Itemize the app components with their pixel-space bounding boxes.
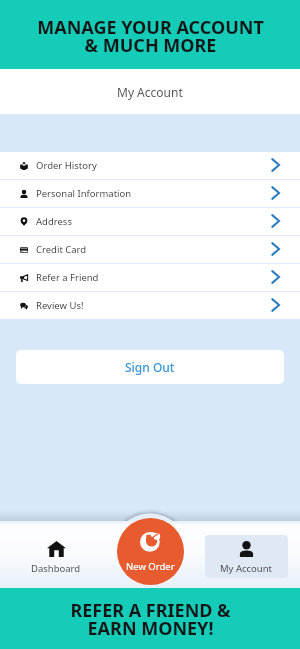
button[interactable]: Review Us! [0, 292, 300, 319]
staticText: Order History [36, 159, 97, 172]
staticText: Credit Card [36, 243, 87, 256]
staticText: REFER A FRIEND & EARN MONEY! [70, 598, 231, 641]
button[interactable]: Credit Card [0, 236, 300, 263]
button[interactable]: Dashboard [0, 521, 112, 588]
staticText: Personal Information [36, 187, 132, 200]
staticText: My Account [220, 562, 273, 575]
button[interactable]: Personal Information [0, 180, 300, 207]
button[interactable]: Sign Out [16, 350, 284, 384]
staticText: MANAGE YOUR ACCOUNT & MUCH MORE [37, 15, 264, 58]
button[interactable]: New Order [117, 518, 184, 585]
button[interactable]: Refer a Friend [0, 264, 300, 291]
staticText: Refer a Friend [36, 271, 99, 284]
staticText: My Account [117, 84, 183, 100]
staticText: Sign Out [125, 359, 175, 375]
button[interactable]: Address [0, 208, 300, 235]
staticText: Dashboard [31, 562, 81, 575]
button[interactable]: My Account [205, 535, 288, 578]
staticText: Review Us! [36, 299, 84, 312]
staticText: Address [36, 215, 72, 228]
button[interactable]: Order History [0, 152, 300, 179]
staticText: New Order [126, 560, 175, 573]
